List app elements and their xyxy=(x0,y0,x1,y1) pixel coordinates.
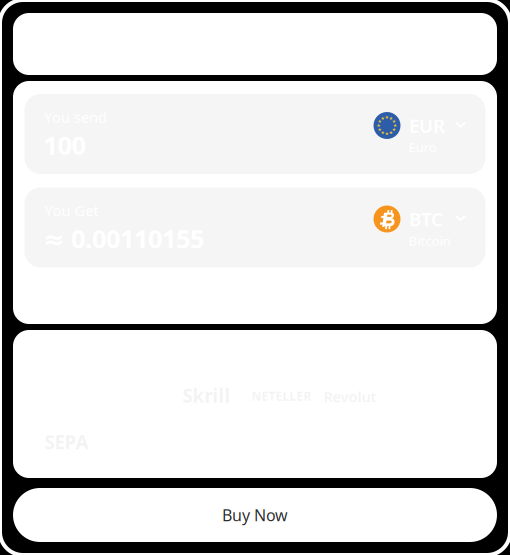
staticText: NETELLER xyxy=(251,388,311,404)
button[interactable]: You send xyxy=(24,94,485,174)
button[interactable]: Buy Now xyxy=(13,488,497,542)
staticText: EUR xyxy=(409,113,445,138)
staticText: ≈ 0.00110155 xyxy=(43,222,204,255)
staticText: Buy Now xyxy=(222,504,288,526)
staticText: 100 xyxy=(43,128,85,162)
staticText: BTC xyxy=(409,207,443,231)
staticText: SEPA xyxy=(44,430,88,454)
staticText: Skrill xyxy=(182,383,230,408)
button[interactable]: You Get xyxy=(24,187,485,267)
staticText: Revolut xyxy=(323,387,376,406)
